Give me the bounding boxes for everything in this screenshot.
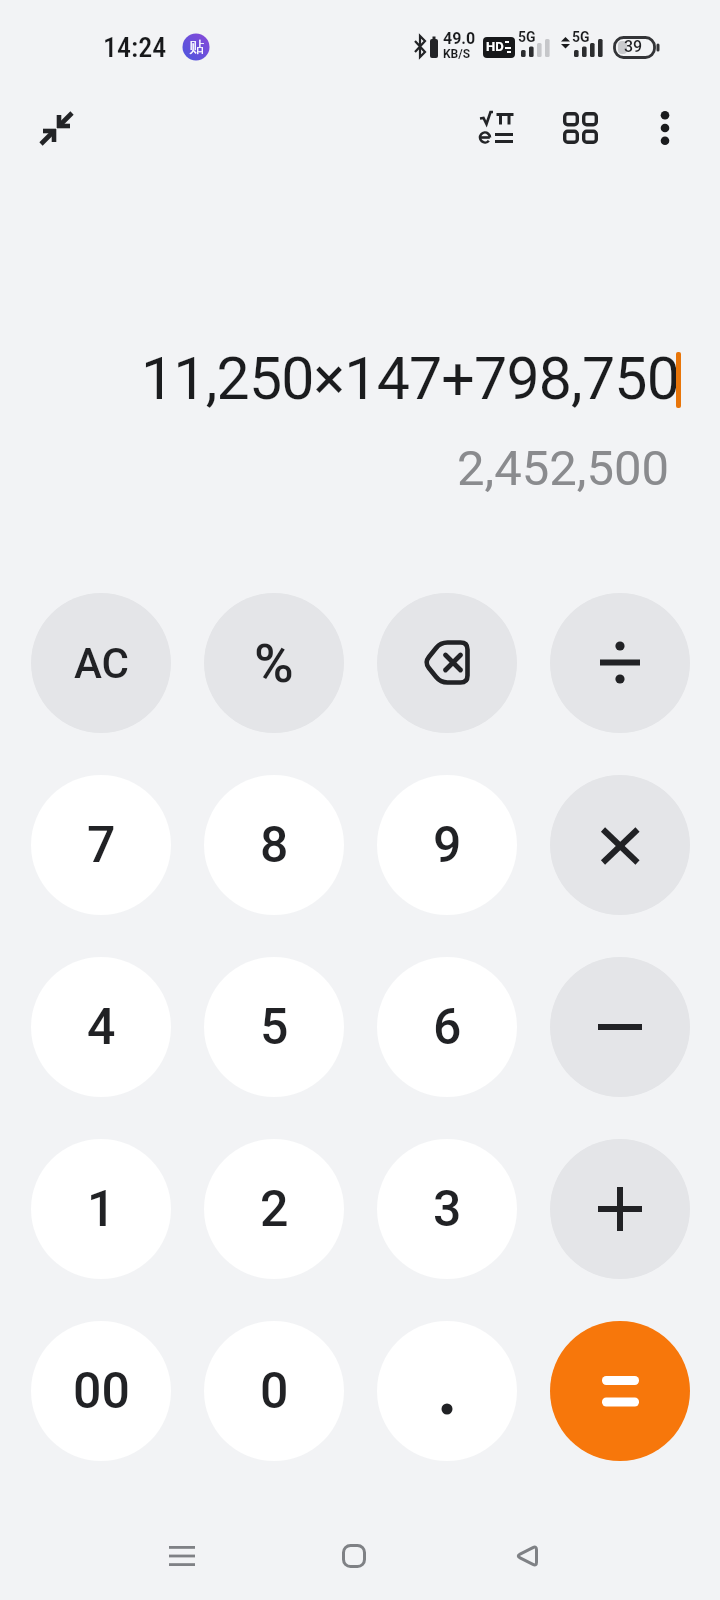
button[interactable]: 2: [204, 1139, 344, 1279]
button[interactable]: 8: [204, 775, 344, 915]
staticText: 贴: [189, 38, 204, 57]
staticText: 8: [260, 816, 289, 875]
staticText: 5: [260, 998, 289, 1057]
button[interactable]: [152, 1526, 212, 1586]
staticText: 9: [433, 816, 462, 875]
button[interactable]: [468, 100, 524, 156]
staticText: 5G: [518, 29, 536, 45]
button[interactable]: 00: [31, 1321, 171, 1461]
staticText: 39: [624, 37, 643, 56]
button[interactable]: 9: [377, 775, 517, 915]
staticText: 11,250×147+798,750: [141, 344, 680, 413]
button[interactable]: 0: [204, 1321, 344, 1461]
staticText: 1: [87, 1180, 116, 1239]
button[interactable]: AC: [31, 593, 171, 733]
button[interactable]: [552, 100, 608, 156]
staticText: 3: [433, 1180, 462, 1239]
button[interactable]: [377, 1321, 517, 1461]
staticText: AC: [74, 639, 129, 688]
button[interactable]: 3: [377, 1139, 517, 1279]
button[interactable]: 7: [31, 775, 171, 915]
staticText: 7: [87, 816, 116, 875]
button[interactable]: [642, 100, 688, 156]
button[interactable]: [324, 1526, 384, 1586]
button[interactable]: 6: [377, 957, 517, 1097]
button[interactable]: [550, 1321, 690, 1461]
staticText: %: [254, 632, 294, 695]
staticText: 14:24: [103, 31, 167, 64]
staticText: 49.0: [443, 29, 476, 48]
button[interactable]: 5: [204, 957, 344, 1097]
staticText: KB/S: [443, 47, 471, 61]
button[interactable]: %: [204, 593, 344, 733]
button[interactable]: [377, 593, 517, 733]
button[interactable]: [496, 1526, 556, 1586]
button[interactable]: [550, 957, 690, 1097]
staticText: HD: [486, 39, 504, 54]
button[interactable]: [550, 593, 690, 733]
button[interactable]: 4: [31, 957, 171, 1097]
button[interactable]: [550, 1139, 690, 1279]
staticText: 2: [260, 1180, 289, 1239]
staticText: 2,452,500: [457, 440, 670, 497]
button[interactable]: [550, 775, 690, 915]
button[interactable]: 1: [31, 1139, 171, 1279]
staticText: 6: [433, 998, 462, 1057]
button[interactable]: [28, 100, 88, 160]
staticText: 0: [260, 1362, 289, 1421]
staticText: 4: [87, 998, 116, 1057]
staticText: 00: [73, 1362, 130, 1421]
staticText: 5G: [572, 29, 590, 45]
